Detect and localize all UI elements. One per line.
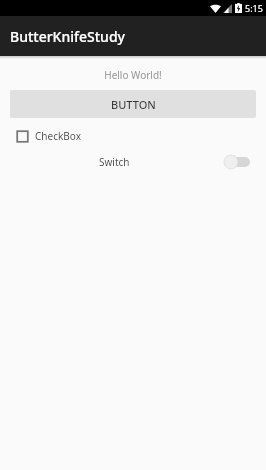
- staticText: CheckBox: [35, 129, 81, 143]
- button[interactable]: Switch: [99, 152, 250, 172]
- other: Switch toggle: [224, 155, 250, 169]
- staticText: Hello World!: [104, 68, 162, 82]
- button[interactable]: CheckBox: [16, 126, 81, 146]
- staticText: Switch: [99, 155, 130, 169]
- staticText: ButterKnifeStudy: [10, 27, 125, 46]
- staticText: 5:15: [245, 2, 263, 14]
- button[interactable]: BUTTON: [10, 90, 256, 118]
- staticText: BUTTON: [111, 97, 156, 112]
